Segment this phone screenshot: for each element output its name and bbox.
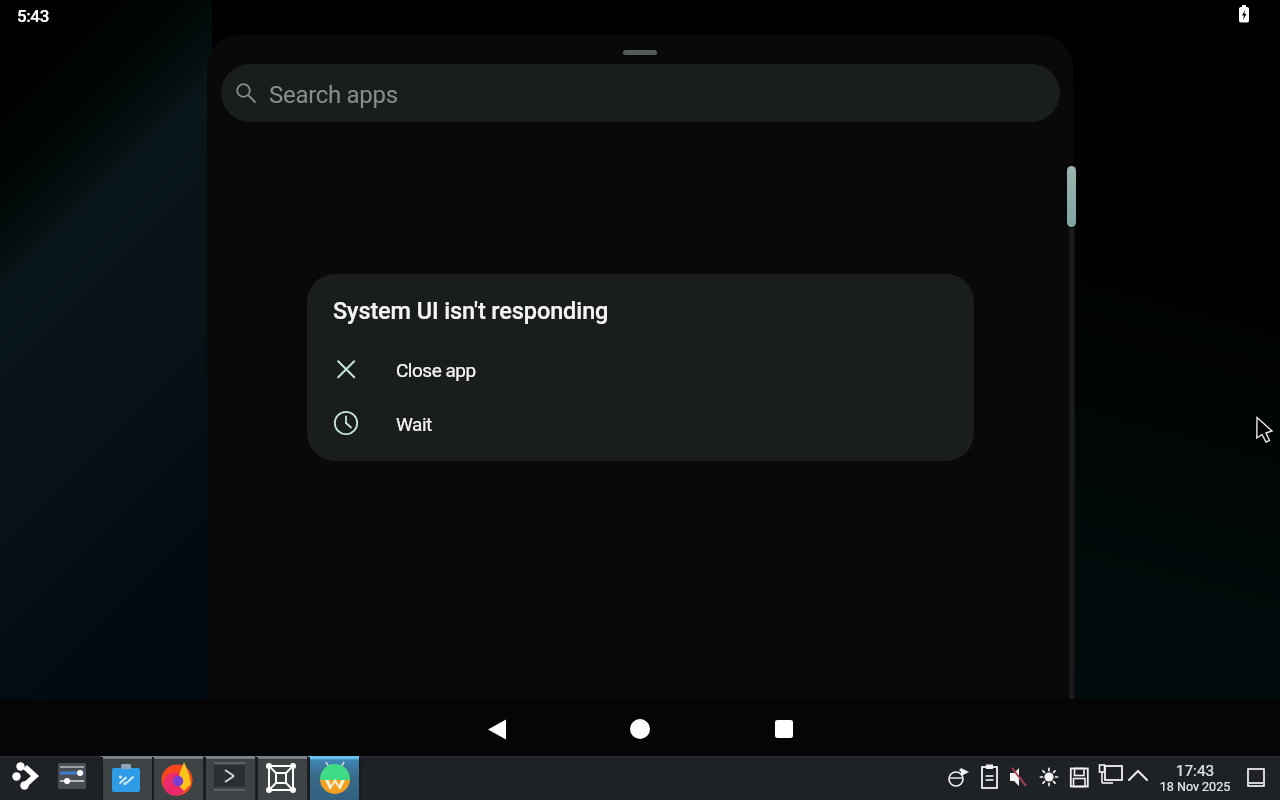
staticText: Search apps <box>269 81 398 109</box>
staticText: Wait <box>396 413 432 435</box>
button[interactable]: Settings manager <box>54 760 92 794</box>
staticText: 5:43 <box>17 6 49 26</box>
button[interactable]: Home <box>610 699 670 756</box>
button[interactable]: Show desktop <box>1246 769 1266 787</box>
button[interactable]: Volume muted <box>1008 765 1032 789</box>
staticText: 18 Nov 2025 <box>1151 779 1239 794</box>
button[interactable]: Network <box>948 766 970 788</box>
button[interactable]: Applications menu <box>6 757 48 797</box>
button[interactable]: Terminal window <box>204 756 255 800</box>
button[interactable]: Firefox window <box>152 756 203 800</box>
button[interactable]: Scrcpy window <box>256 756 307 800</box>
button[interactable]: Clipboard <box>981 764 999 790</box>
button[interactable]: Clock <box>1151 758 1239 798</box>
button[interactable]: Back <box>467 699 527 756</box>
button[interactable]: Android Studio window <box>101 756 152 800</box>
staticText: System UI isn't responding <box>333 297 609 325</box>
button[interactable]: Recent apps <box>754 699 814 756</box>
button[interactable]: Display <box>1099 764 1123 788</box>
staticText: 17:43 <box>1151 762 1239 780</box>
button[interactable]: Show hidden icons <box>1127 768 1149 786</box>
button[interactable]: Save <box>1070 767 1090 789</box>
button[interactable]: Emulator window <box>308 756 359 800</box>
button[interactable]: Brightness <box>1040 767 1060 788</box>
button[interactable]: Wait <box>307 402 974 446</box>
button[interactable]: Close app <box>307 348 974 392</box>
button[interactable]: Search apps <box>221 64 1060 122</box>
staticText: Close app <box>396 359 476 381</box>
